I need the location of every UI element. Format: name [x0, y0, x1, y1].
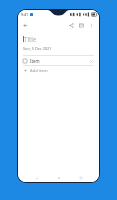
button[interactable]: Remove item [88, 58, 94, 64]
button[interactable]: Home [55, 174, 63, 182]
staticText: Sun, 5 Dec 2021 [23, 46, 52, 51]
button[interactable]: Archive [77, 21, 86, 30]
staticText: Add item [30, 68, 48, 74]
button[interactable]: Title [23, 35, 94, 43]
staticText: 9:41 [21, 12, 29, 17]
button[interactable]: More options [87, 21, 96, 30]
staticText: Item [30, 58, 88, 64]
button[interactable]: Add item [23, 66, 94, 75]
button[interactable]: Item [23, 56, 94, 65]
button[interactable]: Back [21, 21, 30, 30]
button[interactable]: System back [32, 174, 40, 182]
staticText: Title [24, 35, 37, 43]
button[interactable]: Recent apps [77, 174, 85, 182]
button[interactable]: Share [67, 21, 76, 30]
